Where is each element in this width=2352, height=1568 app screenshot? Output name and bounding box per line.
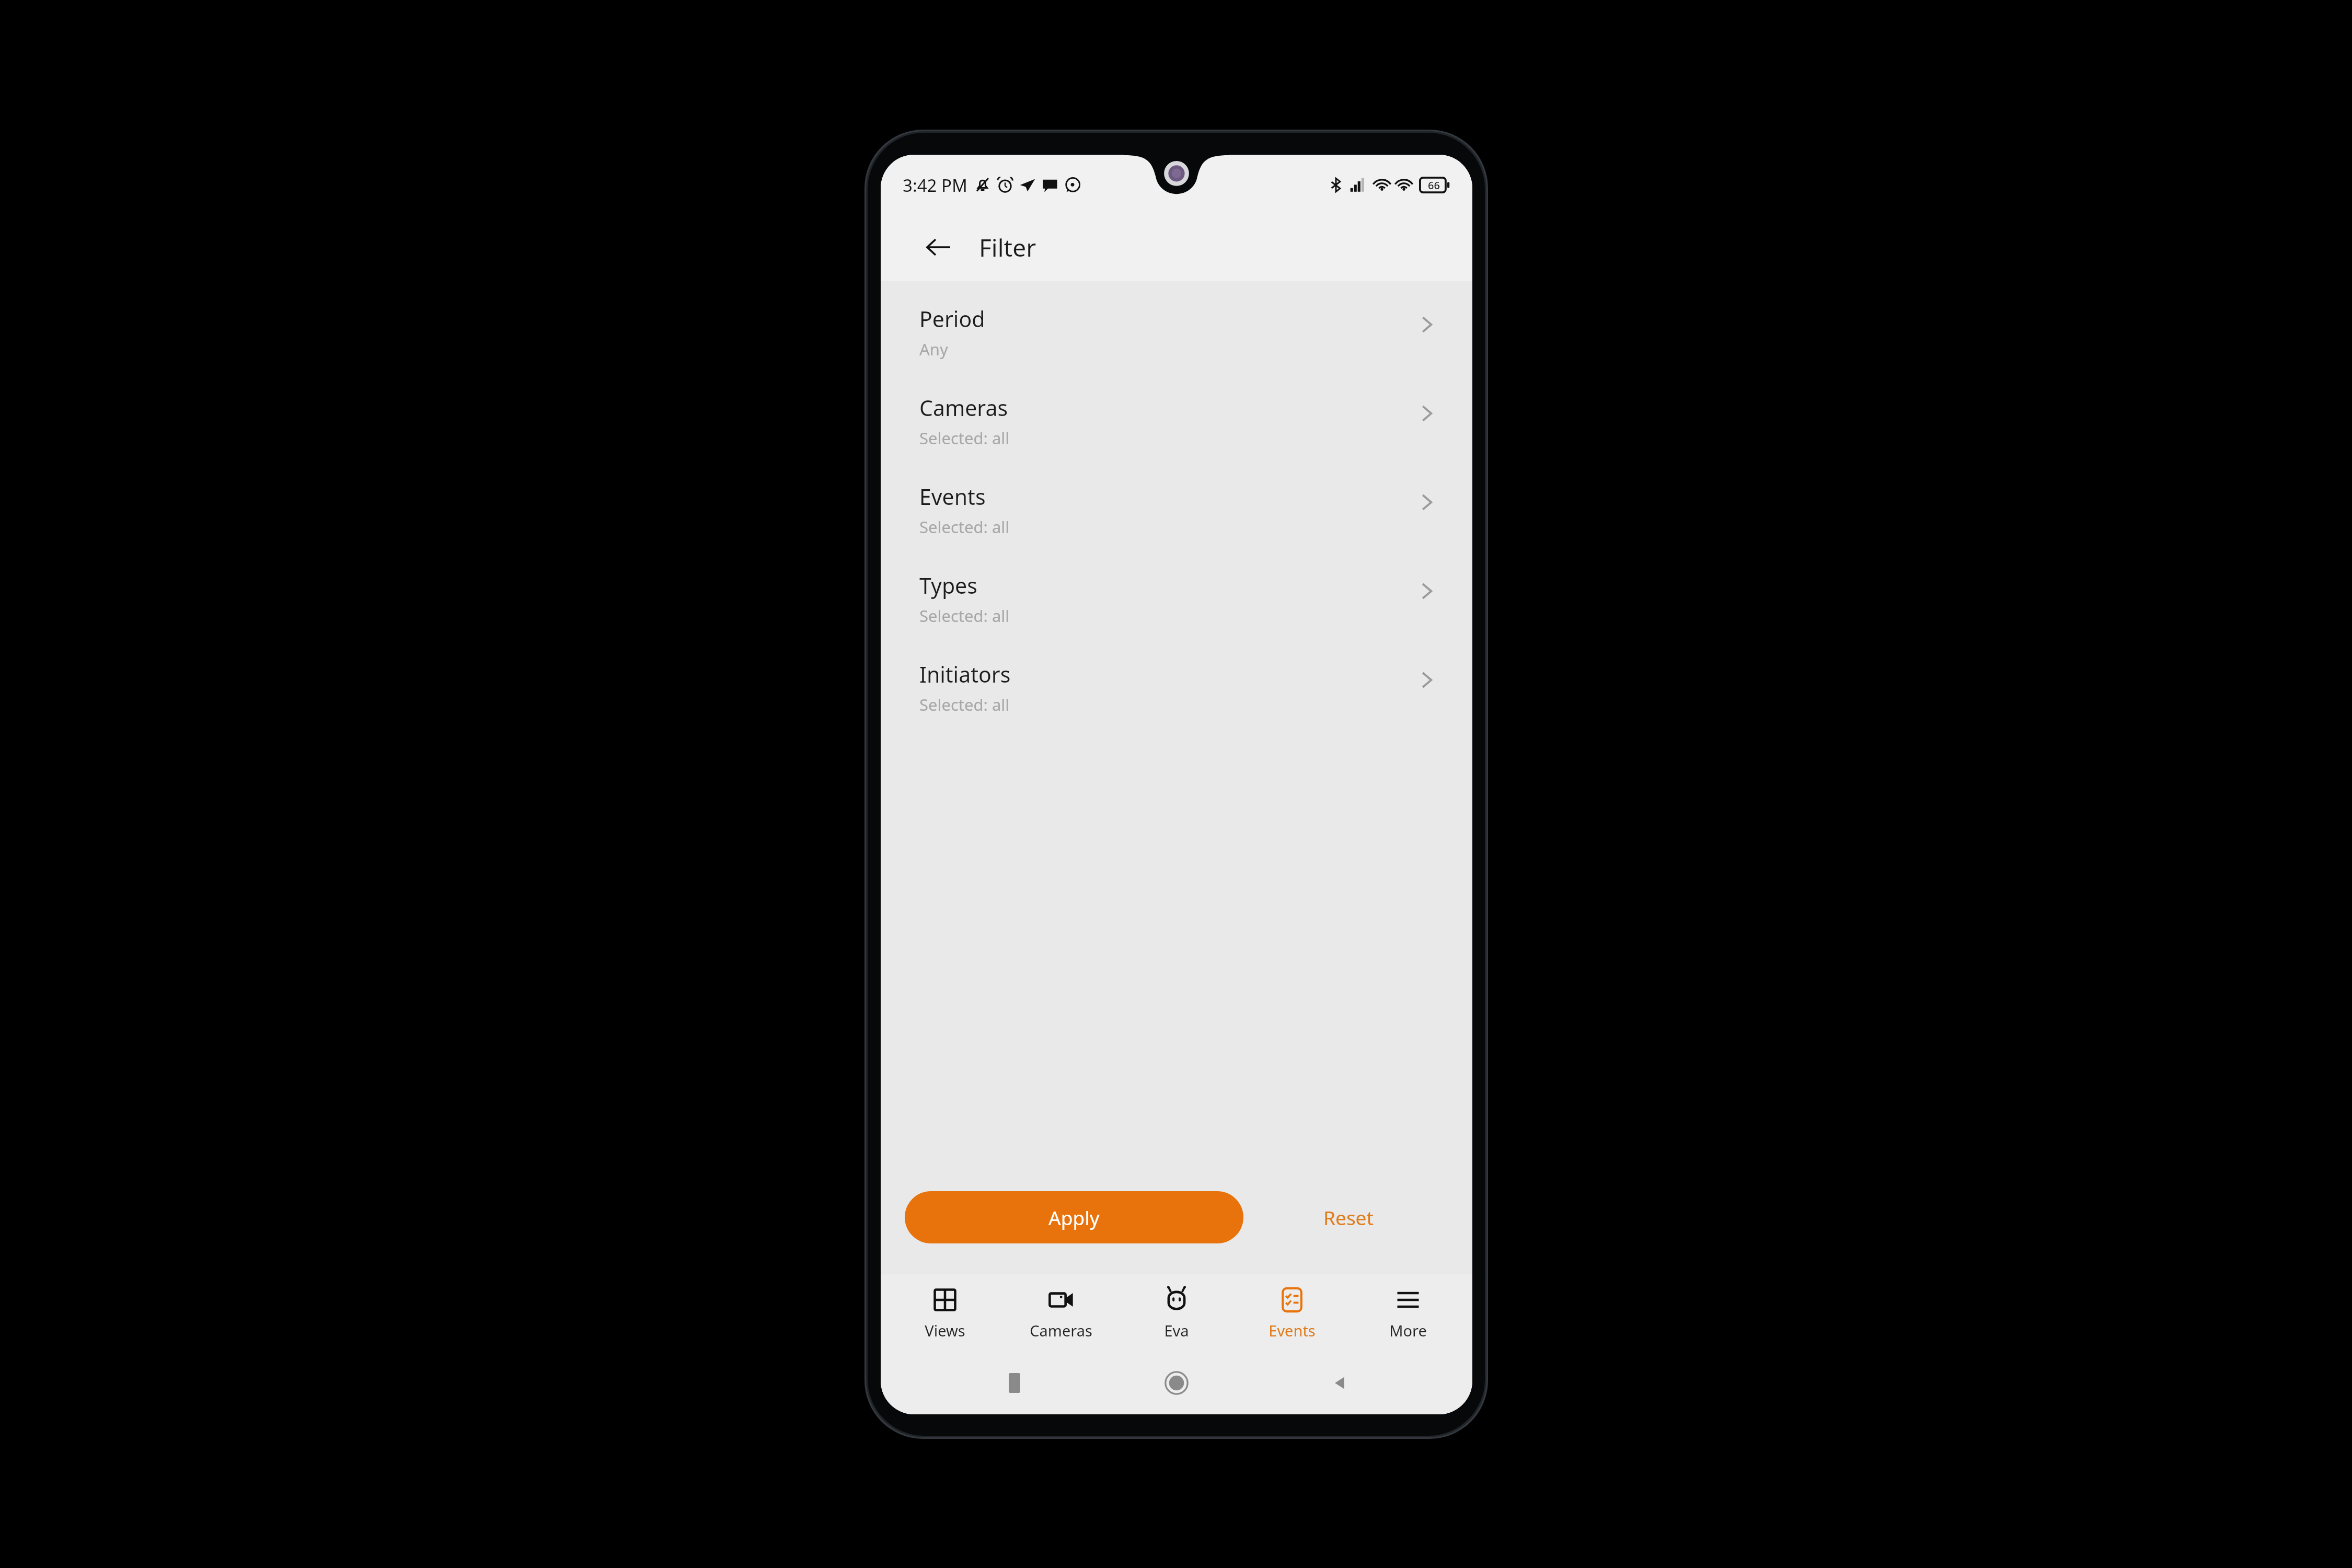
- staticText: Period: [919, 304, 985, 333]
- staticText: Cameras: [919, 393, 1008, 422]
- button[interactable]: Back: [1310, 1354, 1368, 1412]
- staticText: Filter: [979, 231, 1036, 264]
- staticText: Selected: all: [919, 605, 1010, 627]
- button[interactable]: More: [1357, 1274, 1459, 1352]
- button[interactable]: Cameras: [1010, 1274, 1112, 1352]
- button[interactable]: Reset: [1243, 1191, 1454, 1243]
- button[interactable]: Recents: [986, 1354, 1043, 1412]
- staticText: 3:42 PM: [903, 174, 967, 197]
- button[interactable]: Views: [894, 1274, 996, 1352]
- button[interactable]: Events: [881, 465, 1472, 554]
- staticText: Selected: all: [919, 427, 1010, 449]
- staticText: Apply: [1048, 1204, 1100, 1230]
- staticText: Any: [919, 338, 948, 360]
- button[interactable]: Types: [881, 554, 1472, 643]
- staticText: Events: [919, 482, 986, 511]
- staticText: More: [1389, 1320, 1427, 1341]
- staticText: Reset: [1323, 1204, 1374, 1230]
- staticText: 66: [1428, 178, 1440, 192]
- button[interactable]: Apply: [905, 1191, 1243, 1243]
- staticText: Types: [919, 571, 977, 600]
- staticText: Events: [1269, 1320, 1316, 1341]
- button[interactable]: Cameras: [881, 376, 1472, 465]
- button[interactable]: Back: [918, 227, 959, 268]
- staticText: Selected: all: [919, 516, 1010, 538]
- button[interactable]: Home: [1148, 1354, 1205, 1412]
- button[interactable]: Period: [881, 287, 1472, 376]
- staticText: Selected: all: [919, 694, 1010, 716]
- staticText: Views: [925, 1320, 965, 1341]
- button[interactable]: Eva: [1125, 1274, 1228, 1352]
- button[interactable]: Initiators: [881, 643, 1472, 732]
- staticText: Cameras: [1030, 1320, 1092, 1341]
- staticText: Initiators: [919, 660, 1011, 689]
- button[interactable]: Events: [1241, 1274, 1343, 1352]
- staticText: Eva: [1164, 1320, 1189, 1341]
